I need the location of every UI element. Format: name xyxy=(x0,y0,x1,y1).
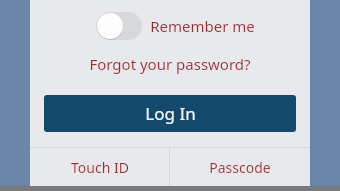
button[interactable]: Remember me switch, off xyxy=(96,12,142,40)
staticText: Remember me xyxy=(150,16,255,36)
button[interactable]: Log In xyxy=(44,95,296,132)
staticText: Log In xyxy=(145,102,196,125)
staticText: Forgot your password? xyxy=(89,54,251,74)
button[interactable]: Touch ID xyxy=(30,148,169,186)
button[interactable]: Forgot your password? xyxy=(30,52,310,76)
staticText: Passcode xyxy=(209,158,271,177)
staticText: Touch ID xyxy=(71,158,129,177)
button[interactable]: Passcode xyxy=(170,148,310,186)
